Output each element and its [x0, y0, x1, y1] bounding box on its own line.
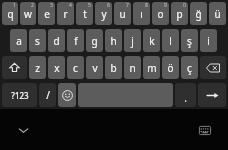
staticText: 6 — [107, 2, 110, 9]
staticText: q — [7, 7, 14, 21]
button[interactable]: ü — [209, 2, 226, 25]
staticText: / — [46, 88, 50, 102]
button[interactable]: k — [143, 29, 160, 52]
button[interactable]: h — [105, 29, 122, 52]
staticText: 1 — [13, 2, 16, 9]
staticText: s — [35, 34, 40, 48]
button[interactable]: f — [67, 29, 84, 52]
staticText: ?123 — [11, 90, 29, 101]
staticText: b — [110, 61, 117, 75]
staticText: a — [16, 34, 22, 48]
button[interactable]: Shift — [2, 56, 27, 79]
staticText: h — [110, 34, 117, 48]
button[interactable]: Switch keyboard — [194, 119, 216, 141]
button[interactable]: . — [175, 83, 196, 107]
button[interactable]: Hide keyboard — [12, 119, 34, 141]
staticText: 5 — [88, 2, 91, 9]
staticText: 2 — [31, 2, 34, 9]
button[interactable]: y — [95, 2, 112, 25]
button[interactable]: o — [152, 2, 169, 25]
button[interactable]: u — [114, 2, 131, 25]
staticText: p — [176, 7, 183, 21]
button[interactable]: Emoji — [58, 83, 76, 107]
button[interactable]: j — [124, 29, 141, 52]
staticText: 3 — [50, 2, 53, 9]
button[interactable]: ı — [133, 2, 150, 25]
button[interactable]: ?123 — [2, 83, 37, 107]
staticText: n — [129, 61, 136, 75]
button[interactable]: b — [105, 56, 122, 79]
button[interactable]: Enter — [198, 83, 226, 107]
staticText: z — [35, 61, 40, 75]
staticText: w — [24, 7, 32, 21]
button[interactable]: m — [143, 56, 160, 79]
staticText: v — [92, 61, 98, 75]
button[interactable]: ğ — [190, 2, 207, 25]
staticText: l — [169, 34, 172, 48]
staticText: ş — [187, 34, 192, 48]
staticText: ğ — [195, 7, 202, 21]
staticText: o — [157, 7, 164, 21]
button[interactable]: e — [38, 2, 55, 25]
staticText: i — [207, 34, 210, 48]
button[interactable]: ö — [162, 56, 179, 79]
staticText: ü — [214, 7, 221, 21]
button[interactable]: s — [29, 29, 46, 52]
staticText: r — [63, 7, 68, 21]
staticText: m — [147, 61, 157, 75]
button[interactable]: w — [20, 2, 36, 25]
button[interactable]: a — [10, 29, 27, 52]
staticText: t — [83, 7, 87, 21]
button[interactable]: ş — [181, 29, 198, 52]
button[interactable]: ç — [181, 56, 198, 79]
staticText: d — [53, 34, 60, 48]
button[interactable]: n — [124, 56, 141, 79]
staticText: u — [119, 7, 126, 21]
staticText: 0 — [183, 2, 186, 9]
button[interactable]: g — [86, 29, 103, 52]
button[interactable]: / — [39, 83, 56, 107]
staticText: f — [74, 34, 78, 48]
staticText: j — [131, 34, 134, 48]
staticText: e — [44, 7, 50, 21]
staticText: ç — [187, 61, 192, 75]
staticText: g — [91, 34, 98, 48]
staticText: 9 — [164, 2, 167, 9]
staticText: . — [184, 91, 187, 105]
button[interactable]: p — [171, 2, 188, 25]
staticText: 8 — [145, 2, 148, 9]
button[interactable]: l — [162, 29, 179, 52]
staticText: 7 — [126, 2, 129, 9]
staticText: ı — [140, 7, 143, 21]
button[interactable]: x — [48, 56, 65, 79]
staticText: y — [101, 7, 107, 21]
staticText: 4 — [69, 2, 72, 9]
staticText: ö — [167, 61, 174, 75]
button[interactable]: c — [67, 56, 84, 79]
staticText: k — [149, 34, 155, 48]
staticText: x — [54, 61, 60, 75]
staticText: c — [73, 61, 78, 75]
button[interactable]: t — [76, 2, 93, 25]
button[interactable]: v — [86, 56, 103, 79]
button[interactable]: d — [48, 29, 65, 52]
button[interactable]: q — [2, 2, 18, 25]
button[interactable]: Backspace — [200, 56, 226, 79]
button[interactable]: i — [200, 29, 217, 52]
button[interactable]: r — [57, 2, 74, 25]
button[interactable]: z — [29, 56, 46, 79]
